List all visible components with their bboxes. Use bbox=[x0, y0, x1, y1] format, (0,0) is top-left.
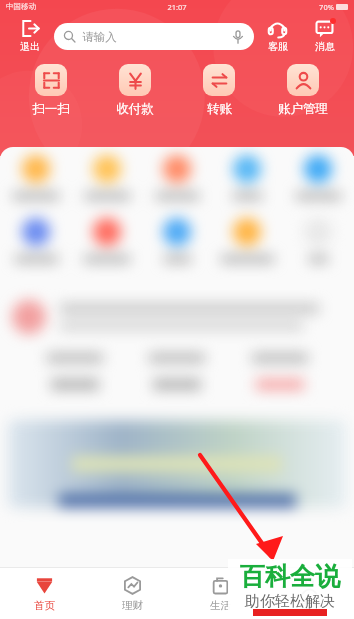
staticText: 首页 bbox=[34, 599, 55, 612]
staticText: 客服 bbox=[268, 40, 288, 53]
button[interactable]: 消息 bbox=[301, 17, 348, 55]
staticText: 中国移动 bbox=[6, 2, 36, 11]
button[interactable]: 生活 bbox=[176, 568, 265, 619]
button[interactable]: 转账 bbox=[186, 62, 252, 119]
staticText: 转账 bbox=[207, 101, 232, 117]
staticText: 助你轻松解决 bbox=[245, 592, 335, 611]
staticText: 收付款 bbox=[116, 101, 154, 117]
staticText: 消息 bbox=[315, 40, 335, 53]
button[interactable]: 我的 bbox=[265, 568, 354, 619]
staticText: 我的 bbox=[299, 599, 320, 612]
button[interactable]: 首页 bbox=[0, 568, 88, 619]
button[interactable]: 收付款 bbox=[102, 62, 168, 119]
staticText: 退出 bbox=[20, 40, 40, 53]
staticText: 70% bbox=[319, 2, 334, 12]
staticText: 生活 bbox=[210, 599, 231, 612]
staticText: 账户管理 bbox=[278, 101, 328, 117]
staticText: 百科全说 bbox=[240, 561, 340, 592]
button[interactable]: 请输入 bbox=[54, 23, 254, 50]
button[interactable]: 理财 bbox=[88, 568, 176, 619]
button[interactable]: 客服 bbox=[254, 17, 301, 55]
staticText: 扫一扫 bbox=[32, 101, 70, 117]
button[interactable]: 扫一扫 bbox=[18, 62, 84, 119]
staticText: 请输入 bbox=[82, 30, 117, 44]
staticText: 理财 bbox=[122, 599, 143, 612]
staticText: 21:07 bbox=[167, 2, 187, 12]
button[interactable]: 账户管理 bbox=[270, 62, 336, 119]
button[interactable]: 退出 bbox=[6, 17, 54, 55]
